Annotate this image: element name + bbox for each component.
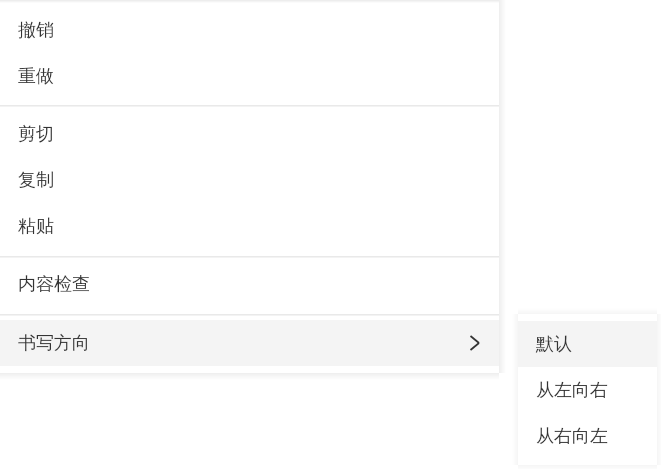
staticText: 书写方向 [18,332,90,355]
staticText: 从左向右 [536,379,608,402]
staticText: 从右向左 [536,425,608,448]
button[interactable]: 从左向右 [518,367,657,413]
button[interactable]: 剪切 [0,111,499,157]
staticText: 内容检查 [18,273,90,296]
button[interactable]: 重做 [0,53,499,99]
staticText: 剪切 [18,123,54,146]
staticText: 粘贴 [18,215,54,238]
staticText: 默认 [536,333,572,356]
staticText: 撤销 [18,19,54,42]
button[interactable]: 书写方向 [0,320,499,366]
button[interactable]: 复制 [0,157,499,203]
other: Open submenu [463,331,487,355]
button[interactable]: 从右向左 [518,413,657,459]
staticText: 复制 [18,169,54,192]
button[interactable]: 粘贴 [0,203,499,249]
button[interactable]: 撤销 [0,7,499,53]
button[interactable]: 内容检查 [0,261,499,307]
button[interactable]: 默认 [518,321,657,367]
staticText: 重做 [18,65,54,88]
